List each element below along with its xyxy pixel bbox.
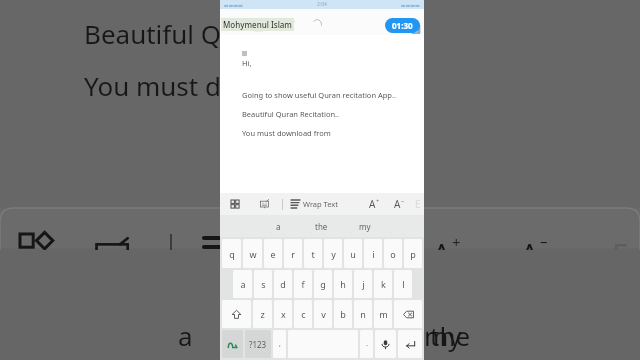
button[interactable]: i xyxy=(364,239,382,268)
button[interactable]: d xyxy=(274,270,292,298)
button[interactable]: n xyxy=(354,300,372,328)
staticText: d xyxy=(280,278,286,290)
staticText: Beautiful Qu xyxy=(84,16,238,51)
staticText: the xyxy=(315,221,328,232)
button[interactable]: 01:30 xyxy=(392,20,413,31)
staticText: k xyxy=(381,278,386,290)
staticText: the xyxy=(430,318,471,353)
staticText: f xyxy=(301,278,305,290)
staticText: + xyxy=(376,197,380,205)
staticText: Hi, xyxy=(242,58,252,68)
staticText: s xyxy=(261,278,266,290)
staticText: ▬▬▬▬ xyxy=(224,2,243,8)
button[interactable]: j xyxy=(354,270,372,298)
button[interactable]: f xyxy=(294,270,312,298)
button[interactable]: a xyxy=(233,270,252,298)
staticText: my xyxy=(359,221,371,232)
button[interactable]: Wrap Text xyxy=(291,199,339,209)
staticText: r xyxy=(291,248,295,260)
button[interactable]: the xyxy=(300,215,343,237)
button[interactable]: Insert xyxy=(256,195,274,213)
button[interactable]: . xyxy=(360,330,373,358)
staticText: A xyxy=(394,197,401,211)
staticText: h xyxy=(340,278,346,290)
button[interactable]: t xyxy=(304,239,322,268)
staticText: Done xyxy=(224,23,242,33)
button[interactable]: u xyxy=(344,239,362,268)
staticText: l xyxy=(402,278,405,290)
staticText: ▬▬▬▬ xyxy=(401,2,420,8)
staticText: p xyxy=(410,248,416,260)
staticText: g xyxy=(320,278,326,290)
staticText: my xyxy=(424,318,462,353)
staticText: E xyxy=(415,197,421,211)
button[interactable]: s xyxy=(254,270,272,298)
button[interactable]: e xyxy=(264,239,282,268)
button[interactable]: Backspace xyxy=(394,300,422,328)
staticText: a xyxy=(240,278,246,290)
button[interactable]: A xyxy=(369,197,380,211)
button[interactable]: , xyxy=(273,330,286,358)
staticText: A xyxy=(520,234,540,275)
button[interactable]: z xyxy=(253,300,272,328)
button[interactable]: r xyxy=(284,239,302,268)
staticText: y xyxy=(331,248,336,260)
staticText: c xyxy=(301,308,306,320)
button[interactable]: x xyxy=(274,300,292,328)
staticText: v xyxy=(321,308,326,320)
button[interactable]: Voice input xyxy=(375,330,396,358)
button[interactable]: a xyxy=(257,215,300,237)
staticText: n xyxy=(360,308,366,320)
staticText: w xyxy=(249,248,257,260)
staticText: b xyxy=(340,308,346,320)
button[interactable]: Mohymenul Islam xyxy=(223,19,292,30)
button[interactable]: Undo xyxy=(282,14,298,30)
staticText: – xyxy=(540,231,548,251)
staticText: z xyxy=(260,308,265,320)
staticText: Mohymenul Islam xyxy=(223,19,292,30)
staticText: You must d xyxy=(84,68,221,103)
staticText: + xyxy=(452,232,461,252)
button[interactable]: Language xyxy=(222,330,243,358)
button[interactable]: b xyxy=(334,300,352,328)
button[interactable]: q xyxy=(222,239,241,268)
staticText: j xyxy=(362,278,365,290)
button[interactable]: o xyxy=(384,239,402,268)
button[interactable]: my xyxy=(343,215,386,237)
staticText: – xyxy=(401,197,405,205)
staticText: Wrap Text xyxy=(303,199,339,209)
button[interactable]: ?123 xyxy=(245,330,271,358)
button[interactable]: v xyxy=(314,300,332,328)
button[interactable]: h xyxy=(334,270,352,298)
staticText: 01:30 xyxy=(392,20,413,31)
staticText: a xyxy=(276,221,281,232)
staticText: , xyxy=(279,339,281,349)
staticText: A xyxy=(432,234,452,275)
staticText: 2:04 xyxy=(317,1,327,8)
button[interactable]: l xyxy=(394,270,412,298)
staticText: i xyxy=(372,248,375,260)
staticText: e xyxy=(270,248,276,260)
button[interactable]: k xyxy=(374,270,392,298)
button[interactable]: A xyxy=(394,197,405,211)
button[interactable]: Redo xyxy=(310,14,326,30)
button[interactable]: Enter xyxy=(398,330,422,358)
staticText: u xyxy=(350,248,356,260)
staticText: You must download from xyxy=(242,128,331,138)
button[interactable]: w xyxy=(243,239,262,268)
button[interactable]: m xyxy=(374,300,392,328)
button[interactable]: c xyxy=(294,300,312,328)
staticText: Going to show useful Quran recitation Ap… xyxy=(242,90,397,100)
button[interactable]: Apps xyxy=(226,195,244,213)
staticText: m xyxy=(379,308,388,320)
button[interactable]: g xyxy=(314,270,332,298)
button[interactable]: Shift xyxy=(222,300,251,328)
button[interactable]: p xyxy=(404,239,422,268)
staticText: ?123 xyxy=(249,339,267,350)
staticText: o xyxy=(390,248,396,260)
staticText: x xyxy=(281,308,286,320)
button[interactable]: y xyxy=(324,239,342,268)
staticText: t xyxy=(311,248,315,260)
